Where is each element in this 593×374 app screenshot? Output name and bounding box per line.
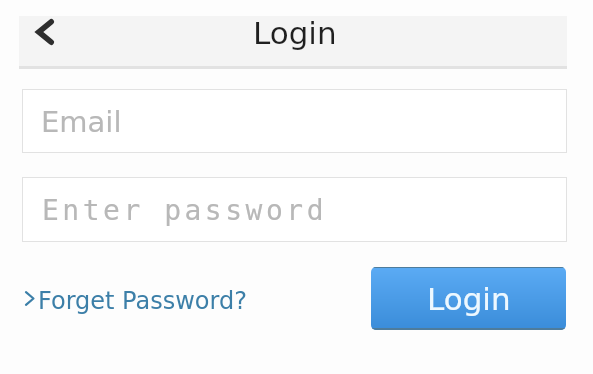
button[interactable]: Email: [22, 89, 567, 153]
button[interactable]: Back: [20, 16, 70, 66]
button[interactable]: Forget Password?: [20, 284, 250, 314]
staticText: Email: [41, 105, 122, 139]
button[interactable]: Enter password: [22, 177, 567, 242]
button[interactable]: Login: [371, 267, 566, 330]
staticText: Login: [427, 281, 511, 317]
staticText: Forget Password?: [38, 287, 247, 315]
staticText: Login: [253, 15, 337, 51]
staticText: Enter password: [42, 194, 328, 227]
